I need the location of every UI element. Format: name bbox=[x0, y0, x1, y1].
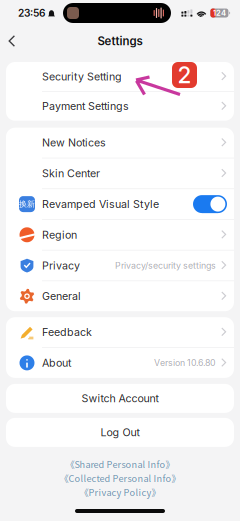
button[interactable]: Security Setting bbox=[6, 62, 234, 91]
staticText: Revamped Visual Style bbox=[42, 198, 159, 210]
staticText: Settings bbox=[97, 34, 142, 48]
button[interactable]: Feedback bbox=[6, 317, 234, 347]
staticText: Privacy bbox=[42, 259, 80, 272]
button[interactable]: Log Out bbox=[0, 418, 240, 447]
staticText: 《Shared Personal Info》 bbox=[65, 457, 174, 471]
staticText: Security Setting bbox=[42, 70, 122, 83]
staticText: 换新 bbox=[19, 199, 35, 209]
staticText: Payment Settings bbox=[42, 100, 129, 113]
button[interactable]: Privacy bbox=[6, 250, 234, 280]
button[interactable]: General bbox=[6, 281, 234, 311]
staticText: Feedback bbox=[42, 326, 92, 339]
button[interactable]: Switch Account bbox=[0, 384, 240, 413]
button[interactable]: 《Collected Personal Info》 bbox=[59, 471, 180, 485]
staticText: Privacy/security settings bbox=[115, 260, 216, 271]
staticText: 2 bbox=[177, 61, 191, 89]
staticText: 124 bbox=[213, 8, 226, 17]
staticText: New Notices bbox=[42, 136, 106, 149]
staticText: About bbox=[42, 356, 71, 369]
button[interactable]: 《Shared Personal Info》 bbox=[65, 457, 174, 471]
staticText: Version 10.6.80 bbox=[154, 358, 216, 368]
staticText: Skin Center bbox=[42, 167, 100, 180]
button[interactable]: 《Privacy Policy》 bbox=[79, 485, 160, 499]
staticText: Region bbox=[42, 228, 77, 241]
button[interactable]: About bbox=[6, 348, 234, 378]
button[interactable]: New Notices bbox=[6, 128, 234, 158]
staticText: 《Privacy Policy》 bbox=[79, 485, 160, 499]
button[interactable]: Payment Settings bbox=[6, 92, 234, 121]
staticText: General bbox=[42, 290, 81, 303]
button[interactable]: Skin Center bbox=[6, 158, 234, 188]
button[interactable]: 换新 bbox=[6, 189, 234, 219]
staticText: 23:56 bbox=[18, 7, 45, 19]
staticText: Switch Account bbox=[81, 392, 158, 405]
button[interactable]: Back bbox=[0, 27, 24, 55]
button[interactable]: Region bbox=[6, 220, 234, 250]
staticText: Log Out bbox=[100, 426, 139, 439]
staticText: 《Collected Personal Info》 bbox=[59, 471, 180, 485]
